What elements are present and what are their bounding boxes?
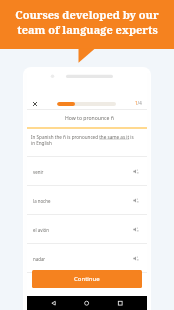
button[interactable]: Play audio	[132, 196, 140, 204]
staticText: venir	[33, 169, 44, 175]
staticText: la noche	[33, 198, 51, 204]
button[interactable]: el avión	[27, 215, 147, 243]
staticText: 1/4	[135, 100, 142, 106]
button[interactable]: venir	[27, 157, 147, 185]
staticText: Continue	[74, 275, 100, 283]
staticText: Courses developed by our	[15, 7, 159, 22]
staticText: How to pronounce ñ	[65, 115, 114, 122]
button[interactable]: nadar	[27, 244, 147, 272]
button[interactable]: Play audio	[132, 225, 140, 233]
button[interactable]: Play audio	[132, 167, 140, 175]
staticText: In Spanish the ñ is pronounced the same …	[31, 134, 137, 147]
button[interactable]: Continue	[32, 270, 142, 288]
staticText: team of language experts	[17, 22, 158, 37]
button[interactable]: la noche	[27, 186, 147, 214]
button[interactable]: Close	[29, 98, 40, 109]
staticText: nadar	[33, 256, 46, 262]
button[interactable]: Play audio	[132, 254, 140, 262]
staticText: el avión	[33, 227, 49, 233]
